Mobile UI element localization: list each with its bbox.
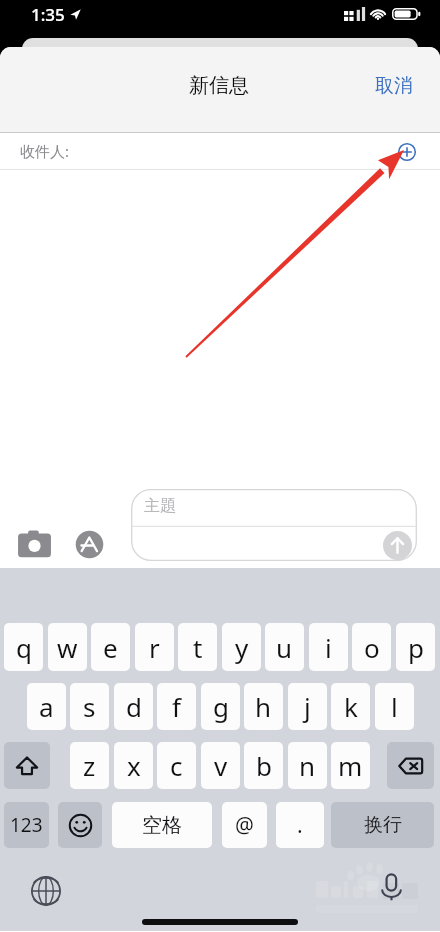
staticText: k <box>344 689 358 724</box>
button[interactable]: 123 <box>4 802 49 848</box>
staticText: p <box>408 630 424 665</box>
button[interactable]: s <box>70 683 109 730</box>
staticText: 空格 <box>142 813 182 838</box>
button[interactable]: App Store <box>75 530 104 559</box>
button[interactable]: b <box>244 742 283 789</box>
button[interactable]: t <box>178 623 217 671</box>
staticText: u <box>276 630 293 665</box>
button[interactable]: 收件人: <box>0 133 440 169</box>
button[interactable]: Switch keyboard language <box>31 876 61 906</box>
button[interactable]: h <box>244 683 283 730</box>
staticText: i <box>325 630 332 665</box>
staticText: m <box>338 748 363 783</box>
staticText: w <box>57 630 78 665</box>
button[interactable]: p <box>396 623 435 671</box>
button[interactable]: r <box>135 623 174 671</box>
staticText: 123 <box>10 812 43 838</box>
button[interactable]: e <box>91 623 130 671</box>
staticText: b <box>256 748 272 783</box>
staticText: h <box>255 689 272 724</box>
button[interactable]: 主題 <box>131 489 417 561</box>
staticText: l <box>391 689 398 724</box>
button[interactable]: 空格 <box>112 802 212 848</box>
button[interactable]: @ <box>222 802 267 848</box>
staticText: 主題 <box>144 496 176 516</box>
staticText: q <box>16 630 32 665</box>
button[interactable]: Shift <box>4 742 50 789</box>
button[interactable]: d <box>114 683 153 730</box>
staticText: 收件人: <box>20 141 70 161</box>
button[interactable]: Add recipient <box>398 143 416 161</box>
staticText: 取消 <box>375 74 413 98</box>
staticText: r <box>149 630 160 665</box>
button[interactable]: m <box>331 742 370 789</box>
button[interactable]: f <box>157 683 196 730</box>
button[interactable]: c <box>157 742 196 789</box>
button[interactable]: v <box>201 742 240 789</box>
staticText: f <box>172 689 181 724</box>
button[interactable]: x <box>114 742 153 789</box>
staticText: 换行 <box>364 813 402 837</box>
button[interactable]: Emoji <box>58 802 102 848</box>
button[interactable]: g <box>201 683 240 730</box>
button[interactable]: 换行 <box>331 802 434 848</box>
staticText: s <box>83 689 96 724</box>
button[interactable]: n <box>288 742 327 789</box>
staticText: . <box>297 811 303 840</box>
staticText: n <box>299 748 316 783</box>
staticText: z <box>83 748 96 783</box>
button[interactable]: a <box>27 683 66 730</box>
staticText: y <box>235 630 249 665</box>
staticText: x <box>127 748 141 783</box>
staticText: e <box>103 630 118 665</box>
button[interactable]: Camera <box>17 530 52 559</box>
staticText: g <box>213 689 229 724</box>
button[interactable]: l <box>375 683 414 730</box>
staticText: @ <box>235 811 254 840</box>
button[interactable]: w <box>48 623 87 671</box>
staticText: t <box>193 630 203 665</box>
button[interactable]: Send <box>383 531 412 560</box>
staticText: v <box>214 748 228 783</box>
staticText: d <box>126 689 142 724</box>
button[interactable]: i <box>309 623 348 671</box>
button[interactable]: o <box>352 623 391 671</box>
button[interactable]: z <box>70 742 109 789</box>
staticText: 1:35 <box>31 3 65 26</box>
staticText: c <box>170 748 183 783</box>
staticText: 新信息 <box>189 73 249 98</box>
button[interactable]: y <box>222 623 261 671</box>
button[interactable]: . <box>276 802 324 848</box>
button[interactable]: q <box>4 623 43 671</box>
button[interactable]: u <box>265 623 304 671</box>
button[interactable]: j <box>288 683 327 730</box>
staticText: j <box>304 689 311 724</box>
button[interactable]: Dictation <box>377 872 406 901</box>
button[interactable]: k <box>331 683 370 730</box>
button[interactable]: 取消 <box>359 66 440 106</box>
button[interactable]: Backspace <box>387 742 434 789</box>
staticText: o <box>364 630 380 665</box>
staticText: a <box>39 689 54 724</box>
